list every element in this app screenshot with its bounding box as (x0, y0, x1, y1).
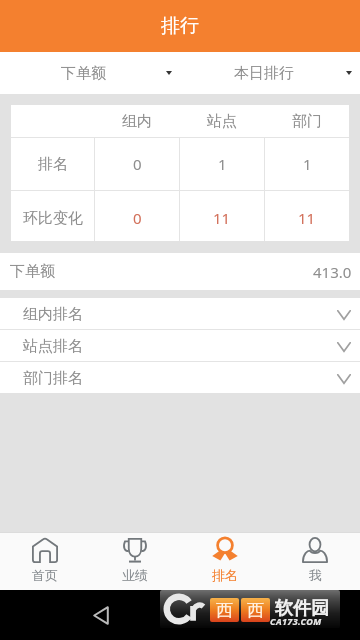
button[interactable]: 下单额 (0, 52, 180, 94)
staticText: 我 (309, 567, 322, 583)
staticText: 业绩 (122, 567, 148, 583)
staticText: 站点 (207, 112, 237, 131)
button[interactable]: 首页 (0, 533, 90, 590)
staticText: 排名 (212, 567, 238, 583)
button[interactable]: 本日排行 (180, 52, 360, 94)
staticText: 排行 (161, 14, 199, 38)
staticText: 413.0 (313, 262, 352, 282)
staticText: 组内 (122, 112, 152, 131)
staticText: 11 (213, 208, 231, 228)
staticText: 部门排名 (23, 369, 83, 388)
staticText: 首页 (32, 567, 58, 583)
button[interactable]: 站点排名 (0, 330, 360, 361)
button[interactable]: 业绩 (90, 533, 180, 590)
button[interactable]: 排名 (180, 533, 270, 590)
staticText: 下单额 (10, 262, 55, 281)
staticText: 西 (247, 600, 264, 621)
staticText: 1 (218, 154, 227, 174)
staticText: 0 (133, 208, 142, 228)
staticText: 环比变化 (23, 209, 83, 228)
button[interactable]: 部门排名 (0, 362, 360, 393)
staticText: 软件园 (275, 597, 329, 620)
staticText: 11 (298, 208, 316, 228)
staticText: 部门 (292, 112, 322, 131)
staticText: 排名 (38, 155, 68, 174)
staticText: 组内排名 (23, 305, 83, 324)
staticText: 本日排行 (234, 64, 294, 83)
staticText: 西 (216, 600, 233, 621)
staticText: CA173.COM (270, 615, 322, 627)
staticText: 下单额 (61, 64, 106, 83)
staticText: 站点排名 (23, 337, 83, 356)
staticText: 0 (133, 154, 142, 174)
button[interactable]: 下单额 (0, 253, 360, 290)
button[interactable]: 组内排名 (0, 298, 360, 329)
button[interactable]: 我 (270, 533, 360, 590)
staticText: 1 (303, 154, 312, 174)
other: Back (93, 606, 109, 625)
